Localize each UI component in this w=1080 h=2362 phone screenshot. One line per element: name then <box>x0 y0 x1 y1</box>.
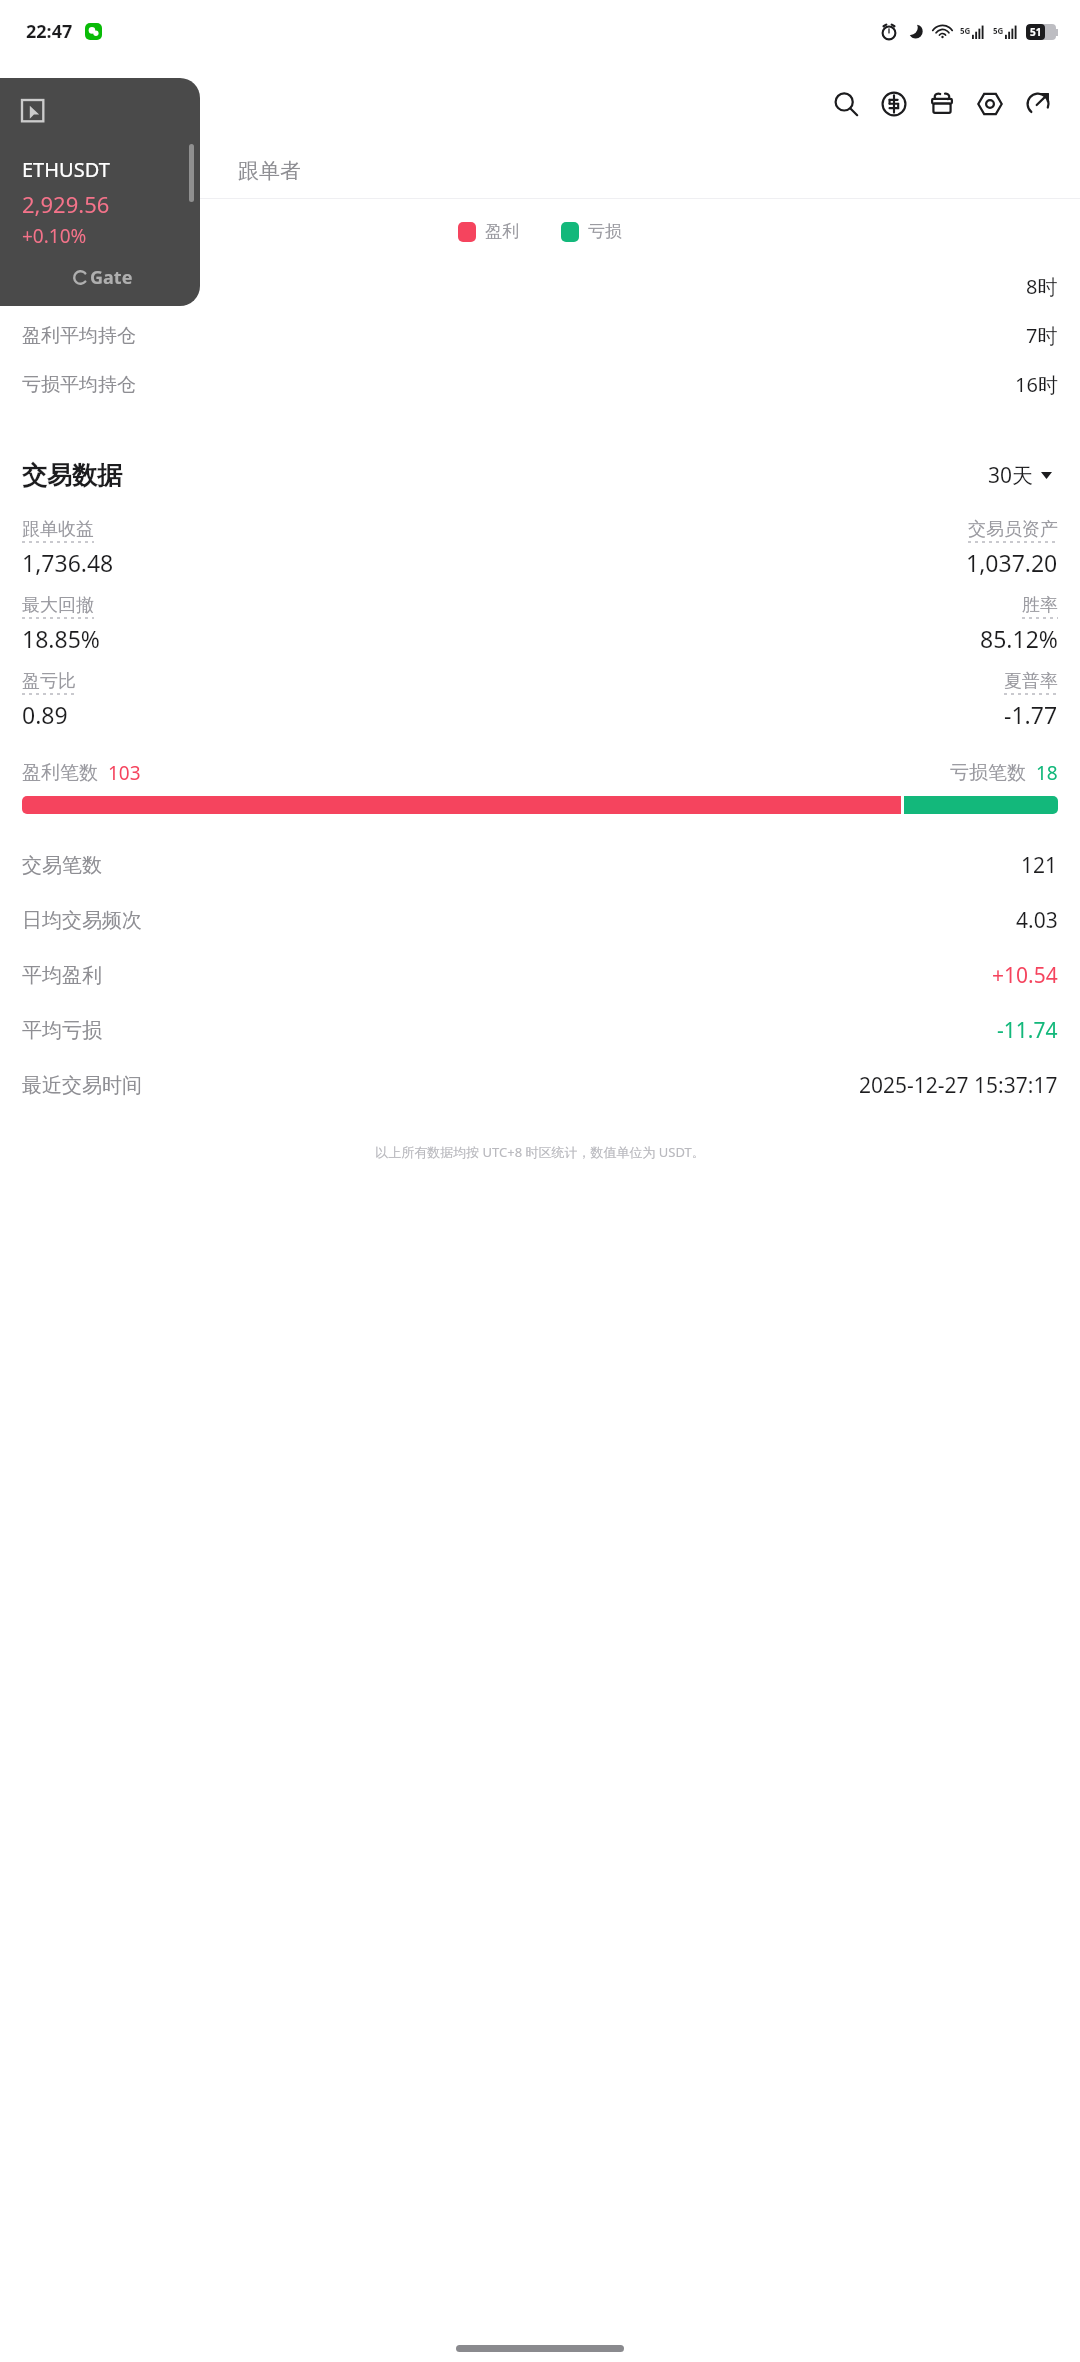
button[interactable]: Search <box>822 80 870 128</box>
staticText: 30天 <box>988 461 1034 490</box>
staticText: 盈利平均持仓 <box>22 324 136 348</box>
button[interactable]: 投资组合 <box>110 146 202 196</box>
staticText: 平均持仓时长 <box>22 275 136 299</box>
staticText: 跟单者 <box>238 158 301 184</box>
staticText: 16时 <box>1015 371 1058 398</box>
staticText: 跟单收益 <box>22 518 94 541</box>
staticText: 交易笔数 <box>22 853 102 878</box>
staticText: 7时 <box>1026 322 1058 349</box>
staticText: 5G <box>993 25 1004 36</box>
button[interactable]: Back <box>26 82 70 126</box>
button[interactable]: Gift <box>918 80 966 128</box>
staticText: 平均亏损 <box>22 1018 102 1043</box>
staticText: 以上所有数据均按 UTC+8 时区统计，数值单位为 USDT。 <box>0 1143 1080 1161</box>
staticText: -1.77 <box>1004 699 1058 730</box>
staticText: 18.85% <box>22 623 100 654</box>
button[interactable]: Share <box>1014 80 1062 128</box>
staticText: 胜率 <box>1022 594 1058 617</box>
staticText: Gate <box>90 265 133 290</box>
staticText: 盈利 <box>485 221 519 242</box>
staticText: 2,929.56 <box>22 189 110 219</box>
staticText: 8时 <box>1026 273 1058 300</box>
staticText: 亏损平均持仓 <box>22 373 136 397</box>
staticText: 盈利笔数 <box>22 761 98 785</box>
staticText: 最近交易时间 <box>22 1073 142 1098</box>
staticText: -11.74 <box>997 1016 1058 1045</box>
staticText: 平均盈利 <box>22 963 102 988</box>
staticText: 5G <box>960 25 971 36</box>
staticText: 交易数据 <box>22 460 122 491</box>
button[interactable]: 跟单者 <box>234 146 305 196</box>
button[interactable]: ETHUSDT <box>0 78 200 306</box>
staticText: 盈亏比 <box>22 670 76 693</box>
staticText: 121 <box>1021 851 1058 880</box>
staticText: 22:47 <box>26 19 73 44</box>
staticText: 夏普率 <box>1004 670 1058 693</box>
button[interactable]: Funds <box>870 80 918 128</box>
staticText: +0.10% <box>22 223 87 249</box>
staticText: 亏损笔数 <box>950 761 1026 785</box>
staticText: 交易员资产 <box>968 518 1058 541</box>
staticText: 85.12% <box>980 623 1058 654</box>
staticText: 2025-12-27 15:37:17 <box>859 1071 1058 1100</box>
staticText: ETHUSDT <box>22 156 110 183</box>
staticText: 1,736.48 <box>22 547 114 578</box>
staticText: 投资组合 <box>114 158 198 184</box>
staticText: 亏损 <box>588 221 622 242</box>
staticText: +10.54 <box>992 961 1058 990</box>
staticText: 0.89 <box>22 699 68 730</box>
button[interactable]: 30天 <box>982 455 1058 496</box>
staticText: 总览 <box>34 158 76 184</box>
staticText: 4.03 <box>1016 906 1058 935</box>
staticText: 日均交易频次 <box>22 908 142 933</box>
staticText: 103 <box>108 760 141 786</box>
button[interactable]: Settings <box>966 80 1014 128</box>
staticText: 最大回撤 <box>22 594 94 617</box>
button[interactable]: 总览 <box>30 146 80 196</box>
staticText: 51 <box>1030 25 1042 39</box>
staticText: 1,037.20 <box>966 547 1058 578</box>
staticText: 18 <box>1036 760 1058 786</box>
